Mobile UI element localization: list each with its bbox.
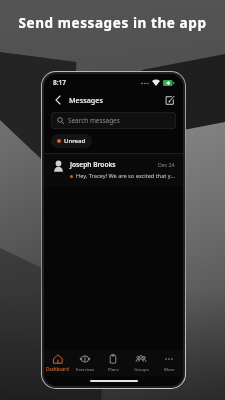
button[interactable]: Back	[51, 93, 65, 107]
button[interactable]: Exercises	[71, 350, 99, 376]
staticText: 8:17	[53, 78, 66, 87]
staticText: Groups	[134, 366, 149, 372]
staticText: Dashboard	[46, 366, 69, 372]
button[interactable]: Groups	[127, 350, 155, 376]
button[interactable]: Search messages	[51, 112, 176, 129]
staticText: Unread	[64, 137, 86, 145]
staticText: Send messages in the app	[18, 14, 207, 32]
button[interactable]: Plans	[99, 350, 127, 376]
button[interactable]: Unread	[51, 134, 92, 148]
staticText: Hey, Tracey! We are so excited that y...	[76, 172, 175, 180]
staticText: More	[164, 366, 175, 372]
button[interactable]: More	[155, 350, 183, 376]
button[interactable]: Compose message	[162, 93, 176, 107]
button[interactable]: Dashboard	[44, 350, 71, 376]
staticText: Joseph Brooks	[70, 160, 116, 169]
staticText: Plans	[108, 366, 119, 372]
button[interactable]: Joseph Brooks	[44, 154, 183, 186]
staticText: Messages	[69, 95, 103, 105]
staticText: Exercises	[76, 366, 95, 372]
staticText: Search messages	[68, 116, 120, 125]
staticText: Dec 24	[158, 161, 175, 168]
